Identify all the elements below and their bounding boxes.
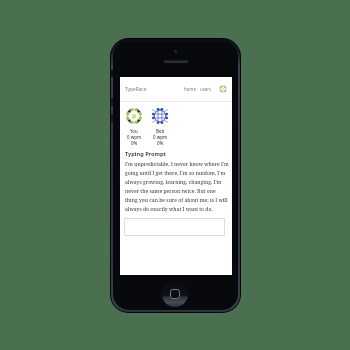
button[interactable]: Bob [151,107,169,146]
staticText: You [130,128,138,134]
button[interactable]: Your profile [219,85,227,93]
staticText: 0 wpm [153,134,168,140]
staticText: 0% [131,140,138,146]
button[interactable]: TypeRace [125,77,227,101]
button[interactable]: users [200,86,212,92]
staticText: Typing Prompt [125,150,166,158]
button[interactable]: home [184,86,196,92]
staticText: 0 wpm [127,134,142,140]
button[interactable]: Typing input field [124,218,225,236]
button[interactable]: You [125,107,143,146]
button[interactable]: TypeRace [125,86,147,93]
staticText: I'm unpredictable, I never know where I'… [125,161,231,212]
staticText: Bob [156,128,165,134]
staticText: 0% [157,140,164,146]
